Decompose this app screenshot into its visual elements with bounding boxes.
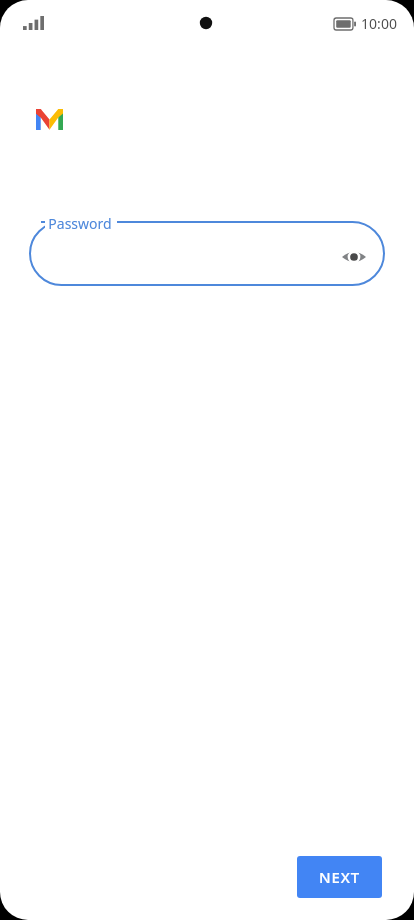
button[interactable]: Password xyxy=(29,215,385,292)
staticText: NEXT xyxy=(319,867,360,887)
button[interactable]: NEXT xyxy=(297,856,382,898)
staticText: 10:00 xyxy=(361,14,397,33)
button[interactable]: Show password xyxy=(335,238,373,276)
staticText: Password xyxy=(48,214,112,233)
